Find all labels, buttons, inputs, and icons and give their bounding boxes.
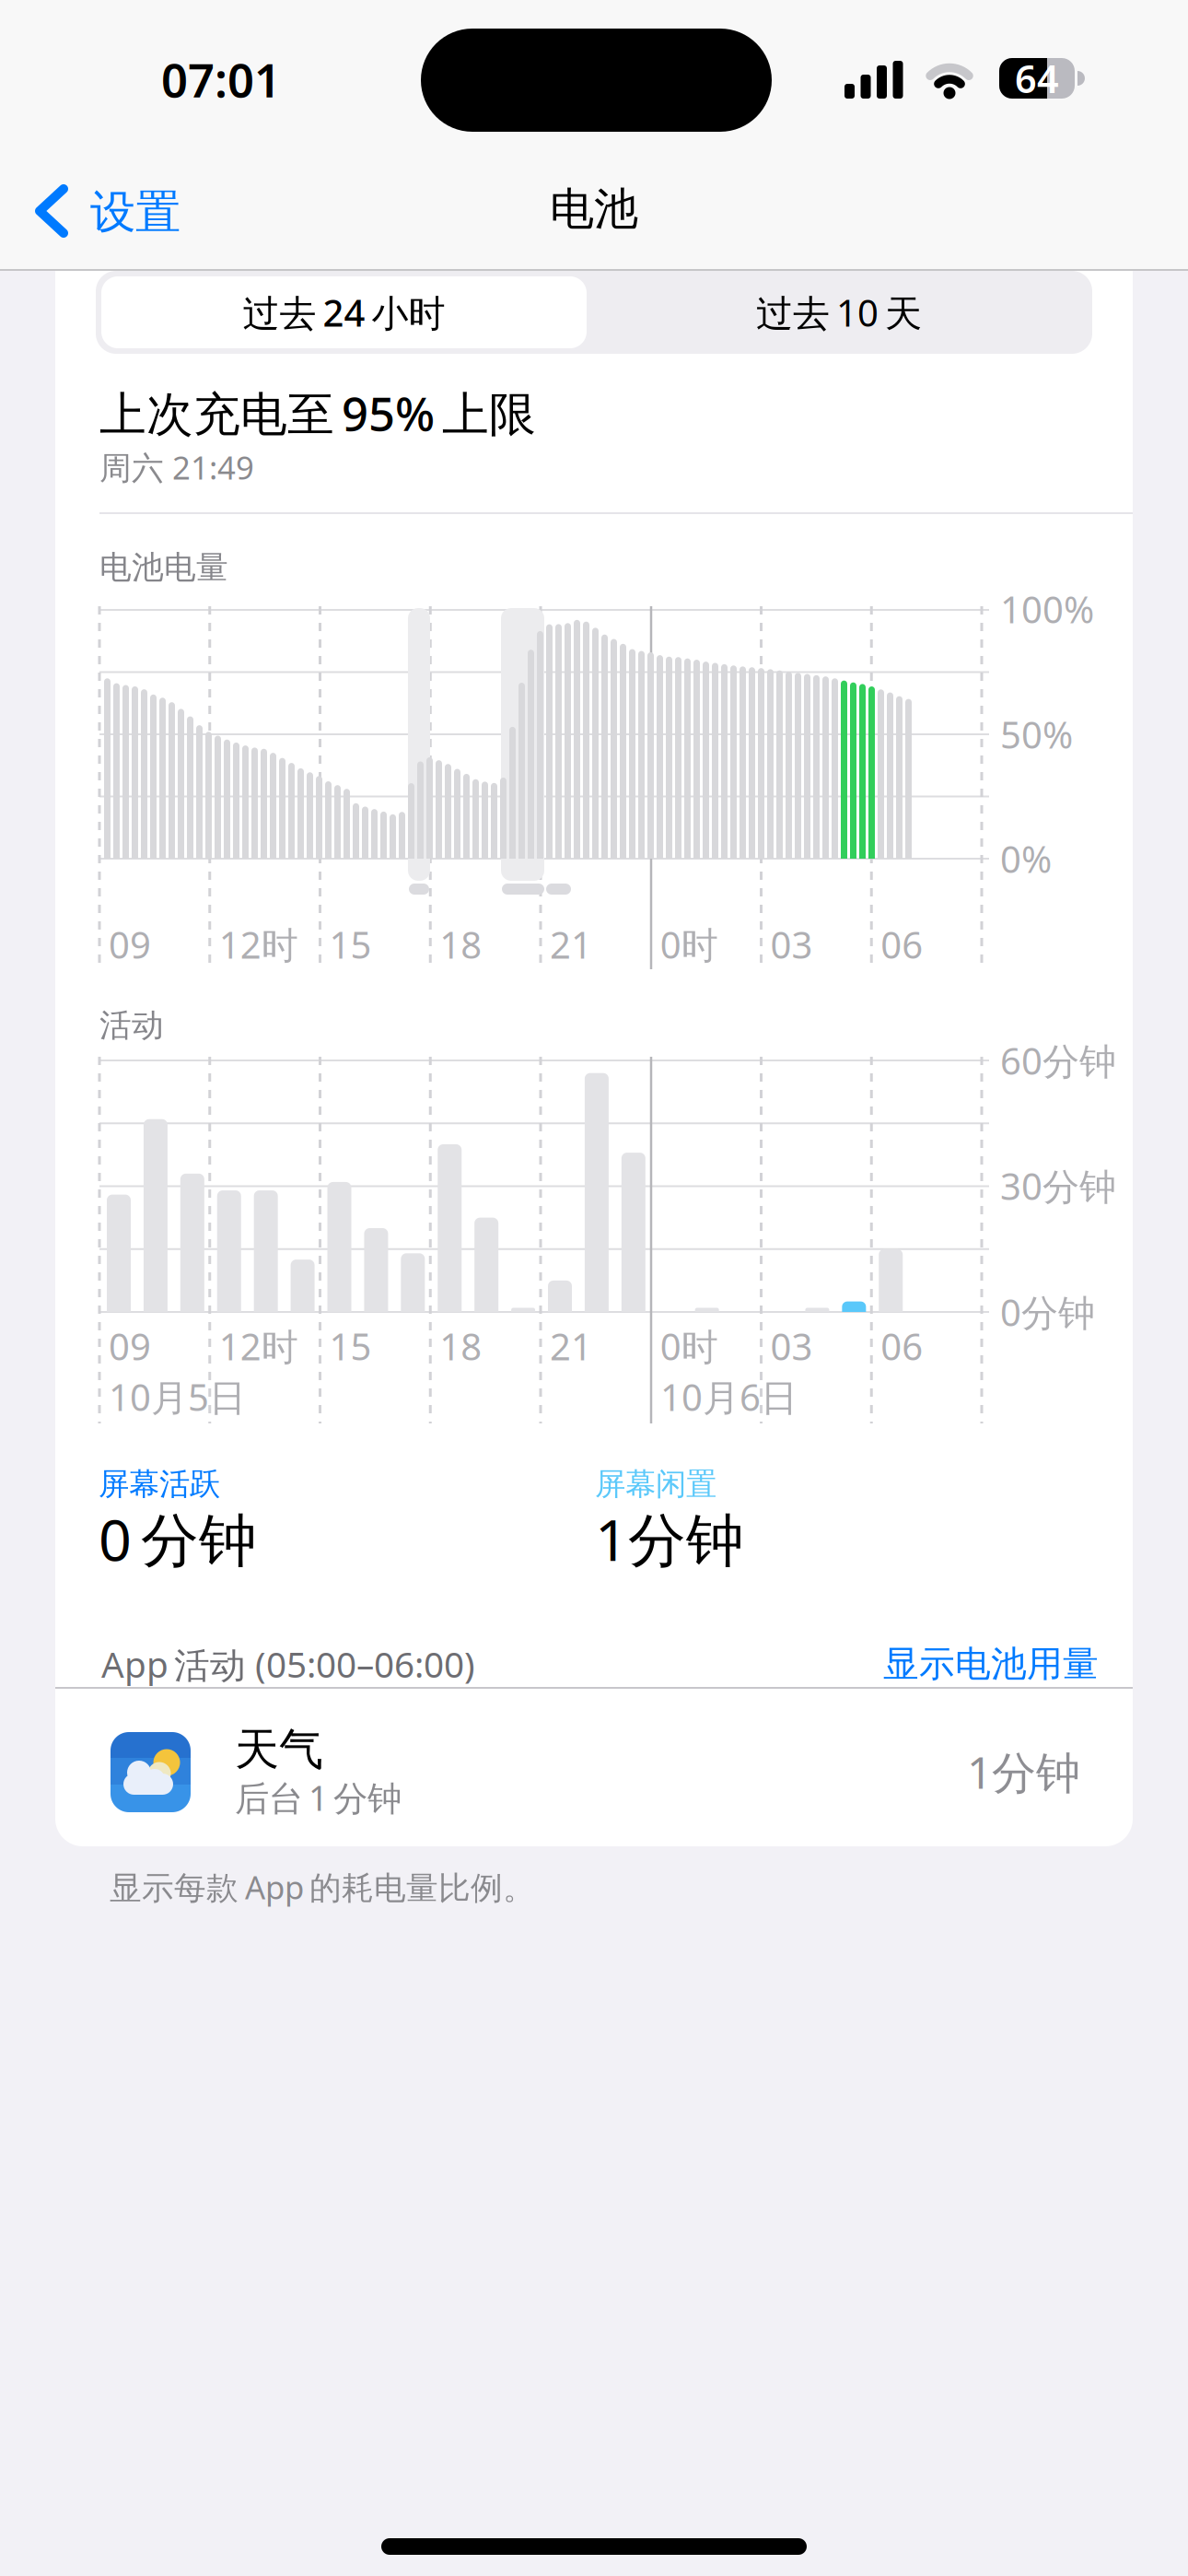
staticText: 18 [439, 920, 482, 969]
staticText: App 活动 (05:00–06:00) [101, 1640, 475, 1688]
staticText: 12时 [219, 1322, 298, 1370]
staticText: 设置 [90, 184, 181, 240]
staticText: 15 [329, 1322, 372, 1370]
staticText: 0时 [660, 920, 718, 969]
staticText: 12时 [219, 920, 298, 969]
staticText: 后台 1 分钟 [235, 1775, 402, 1820]
staticText: 天气 [235, 1722, 323, 1777]
staticText: 过去 10 天 [756, 288, 922, 337]
staticText: 屏幕闲置 [595, 1465, 716, 1503]
staticText: 07:01 [161, 48, 281, 110]
staticText: 0时 [660, 1322, 718, 1370]
staticText: 活动 [99, 1006, 164, 1045]
staticText: 0 分钟 [99, 1500, 257, 1577]
staticText: 0% [1000, 834, 1052, 883]
staticText: 18 [439, 1322, 482, 1370]
staticText: 1分钟 [595, 1500, 744, 1577]
staticText: 06 [881, 1322, 923, 1370]
staticText: 03 [770, 1322, 813, 1370]
staticText: 屏幕活跃 [99, 1465, 220, 1503]
staticText: 09 [109, 1322, 151, 1370]
staticText: 10月5日 [109, 1372, 246, 1421]
staticText: 06 [881, 920, 923, 969]
staticText: 30分钟 [1000, 1161, 1116, 1210]
staticText: 03 [770, 920, 813, 969]
staticText: 过去 24 小时 [243, 288, 445, 337]
button[interactable]: 显示电池用量 [730, 1642, 1099, 1686]
staticText: 64 [1015, 53, 1059, 104]
button[interactable]: 过去 10 天 [596, 276, 1082, 348]
staticText: 0分钟 [1000, 1287, 1095, 1336]
staticText: 100% [1000, 584, 1094, 633]
staticText: 显示每款 App 的耗电量比例。 [110, 1866, 535, 1908]
staticText: 电池电量 [99, 548, 228, 587]
staticText: 60分钟 [1000, 1036, 1116, 1085]
staticText: 15 [329, 920, 372, 969]
staticText: 上次充电至 95% 上限 [99, 382, 536, 444]
button[interactable]: 过去 24 小时 [101, 276, 587, 348]
staticText: 09 [109, 920, 151, 969]
staticText: 10月6日 [660, 1372, 798, 1421]
staticText: 显示电池用量 [883, 1642, 1099, 1686]
button[interactable]: 返回设置 [26, 164, 247, 258]
staticText: 21 [550, 920, 592, 969]
staticText: 21 [550, 1322, 592, 1370]
button[interactable]: 天气 [55, 1689, 1133, 1846]
staticText: 电池 [550, 182, 638, 236]
staticText: 1分钟 [967, 1742, 1080, 1801]
staticText: 周六 21:49 [99, 446, 254, 488]
staticText: 50% [1000, 710, 1073, 759]
